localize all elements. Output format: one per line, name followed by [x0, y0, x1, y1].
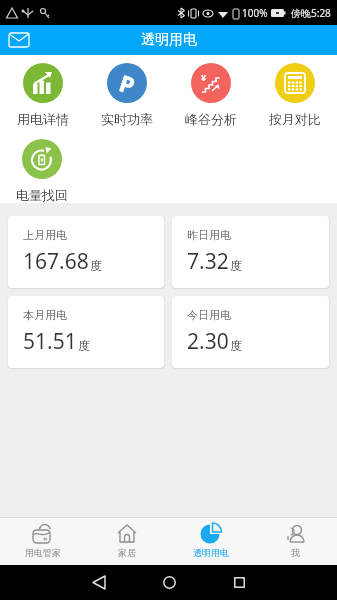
staticText: P [116, 66, 139, 100]
staticText: 度 [230, 258, 242, 273]
button[interactable]: 用电管家 [0, 518, 85, 565]
staticText: 用电管家 [25, 547, 61, 558]
button[interactable]: 本月用电 [8, 296, 164, 368]
button[interactable]: 今日用电 [172, 296, 329, 368]
button[interactable]: 用电详情 [0, 63, 85, 127]
staticText: 按月对比 [269, 111, 321, 127]
staticText: 电量找回 [16, 187, 68, 203]
button[interactable] [211, 565, 267, 600]
button[interactable]: 昨日用电 [172, 216, 329, 288]
button[interactable]: 上月用电 [8, 216, 164, 288]
staticText: 100% [242, 6, 268, 20]
staticText: ¥ [201, 71, 207, 83]
button[interactable] [71, 565, 127, 600]
button[interactable] [141, 565, 197, 600]
staticText: 实时功率 [101, 111, 153, 127]
staticText: 傍晚5:28 [291, 6, 331, 20]
staticText: 家居 [118, 547, 136, 558]
button[interactable]: 家居 [85, 518, 169, 565]
button[interactable]: 透明用电 [169, 518, 253, 565]
staticText: 度 [78, 338, 90, 353]
staticText: 本月用电 [23, 308, 67, 322]
staticText: 透明用电 [193, 547, 229, 558]
staticText: 2.30 [187, 327, 229, 356]
staticText: 用电详情 [17, 111, 69, 127]
staticText: 我 [291, 547, 300, 558]
button[interactable]: 电量找回 [0, 139, 84, 203]
button[interactable]: P [85, 63, 169, 127]
staticText: 51.51 [23, 327, 77, 356]
staticText: 167.68 [23, 247, 89, 276]
staticText: 透明用电 [141, 31, 197, 49]
staticText: 今日用电 [187, 308, 231, 322]
button[interactable]: 我 [253, 518, 337, 565]
staticText: 度 [230, 338, 242, 353]
staticText: 峰谷分析 [185, 111, 237, 127]
button[interactable]: ¥ [169, 63, 253, 127]
staticText: 上月用电 [23, 228, 67, 242]
staticText: 7.32 [187, 247, 229, 276]
staticText: 度 [90, 258, 102, 273]
button[interactable]: 按月对比 [253, 63, 337, 127]
button[interactable] [6, 27, 32, 53]
staticText: 昨日用电 [187, 228, 231, 242]
